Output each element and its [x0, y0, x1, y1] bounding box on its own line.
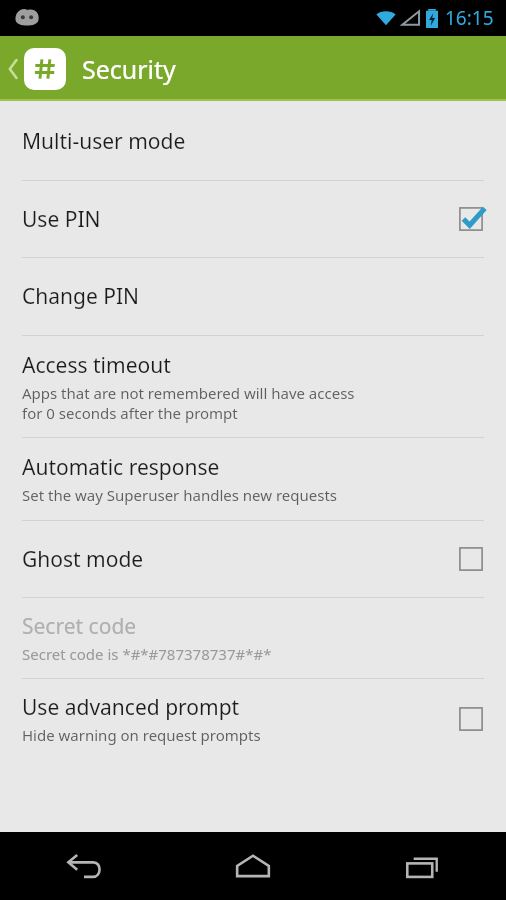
- button[interactable]: Ghost mode: [0, 521, 506, 597]
- button[interactable]: Automatic response: [0, 438, 506, 520]
- staticText: Multi-user mode: [22, 127, 186, 156]
- staticText: Ghost mode: [22, 545, 144, 574]
- staticText: Secret code is *#*#787378737#*#*: [22, 644, 272, 664]
- staticText: 16:15: [445, 5, 494, 31]
- button[interactable]: Change PIN: [0, 258, 506, 335]
- button[interactable]: Use advanced prompt: [0, 679, 506, 759]
- staticText: Access timeout: [22, 351, 171, 380]
- button[interactable]: Multi-user mode: [0, 101, 506, 180]
- staticText: Secret code: [22, 612, 137, 641]
- button[interactable]: Secret code: [0, 598, 506, 678]
- staticText: Change PIN: [22, 282, 140, 311]
- button[interactable]: Access timeout: [0, 336, 506, 437]
- staticText: Use PIN: [22, 205, 101, 234]
- staticText: Hide warning on request prompts: [22, 725, 261, 745]
- button[interactable]: Navigate up: [4, 49, 22, 89]
- staticText: Use advanced prompt: [22, 693, 240, 722]
- button[interactable]: Home: [168, 832, 337, 900]
- button[interactable]: Use PIN: [0, 181, 506, 257]
- staticText: Apps that are not remembered will have a…: [22, 383, 355, 423]
- staticText: Set the way Superuser handles new reques…: [22, 485, 338, 505]
- button[interactable]: Recent apps: [337, 832, 506, 900]
- staticText: Security: [82, 52, 176, 86]
- button[interactable]: Back: [0, 832, 168, 900]
- staticText: Automatic response: [22, 453, 220, 482]
